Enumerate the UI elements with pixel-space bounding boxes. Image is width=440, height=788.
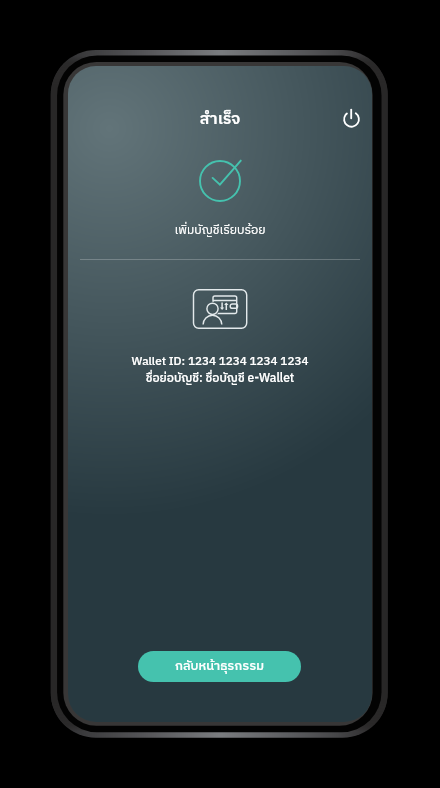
staticText: เพิ่มบัญชีเรียบร้อย [68,220,372,240]
staticText: สำเร็จ [68,106,372,132]
staticText: Wallet ID: 1234 1234 1234 1234 [68,352,372,371]
button[interactable]: กลับหน้าธุรกรรม [138,651,301,682]
staticText: ชื่อย่อบัญชี: ชื่อบัญชี e-Wallet [68,369,372,389]
button[interactable]: Logout [334,101,368,135]
staticText: กลับหน้าธุรกรรม [175,656,264,677]
